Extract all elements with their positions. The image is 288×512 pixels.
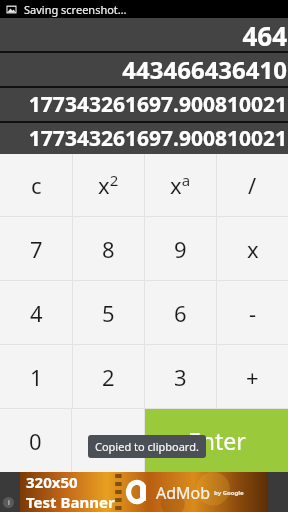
button[interactable]: 2 — [73, 345, 144, 408]
staticText: - — [249, 298, 257, 328]
staticText: Test Banner — [26, 492, 115, 512]
staticText: 0 — [29, 426, 42, 456]
button[interactable]: x — [217, 217, 288, 280]
button[interactable]: 464 — [0, 18, 288, 51]
button[interactable]: 177343261697.900810021 — [0, 88, 288, 121]
staticText: 1 — [30, 362, 43, 392]
button[interactable]: x2 — [73, 154, 144, 216]
staticText: 320x50 — [26, 472, 78, 492]
staticText: 6 — [174, 298, 187, 328]
button[interactable] — [72, 409, 144, 472]
button[interactable]: 4 — [0, 281, 72, 344]
button[interactable]: 3 — [145, 345, 216, 408]
button[interactable]: Enter — [145, 409, 288, 472]
staticText: 2 — [102, 362, 115, 392]
staticText: i — [8, 498, 10, 508]
button[interactable]: 5 — [73, 281, 144, 344]
staticText: x — [247, 234, 259, 264]
button[interactable]: 1 — [0, 345, 72, 408]
staticText: 3 — [174, 362, 187, 392]
staticText: xa — [170, 170, 191, 200]
staticText: 5 — [102, 298, 115, 328]
staticText: 177343261697.900810021 — [28, 90, 287, 119]
staticText: x2 — [98, 170, 119, 200]
staticText: AdMob — [156, 482, 211, 504]
staticText: 4 — [30, 298, 43, 328]
staticText: by Google — [214, 489, 244, 497]
staticText: 443466436410 — [122, 53, 287, 86]
button[interactable]: / — [217, 154, 288, 216]
button[interactable]: + — [217, 345, 288, 408]
button[interactable]: xa — [145, 154, 216, 216]
staticText: Saving screenshot… — [24, 2, 127, 17]
staticText: Enter — [188, 425, 246, 456]
staticText: 7 — [30, 234, 43, 264]
staticText: 8 — [102, 234, 115, 264]
staticText: 464 — [242, 18, 287, 51]
staticText: Copied to clipboard. — [95, 439, 199, 454]
staticText: / — [248, 170, 257, 200]
staticText: + — [246, 362, 259, 392]
staticText: 9 — [174, 234, 187, 264]
button[interactable]: Advertisement — [0, 472, 288, 512]
button[interactable]: 443466436410 — [0, 53, 288, 86]
button[interactable]: 9 — [145, 217, 216, 280]
staticText: c — [31, 170, 42, 200]
staticText: 177343261697.900810021 — [28, 124, 287, 153]
button[interactable]: 6 — [145, 281, 216, 344]
button[interactable]: - — [217, 281, 288, 344]
button[interactable]: 8 — [73, 217, 144, 280]
button[interactable]: 0 — [0, 409, 71, 472]
button[interactable]: c — [0, 154, 72, 216]
button[interactable]: 177343261697.900810021 — [0, 123, 288, 154]
button[interactable]: 7 — [0, 217, 72, 280]
